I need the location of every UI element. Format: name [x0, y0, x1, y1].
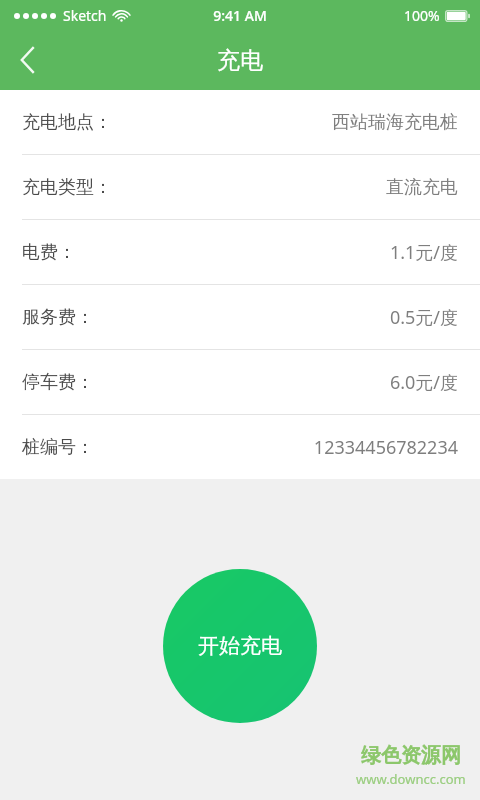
button[interactable]: Back [0, 33, 54, 87]
staticText: 直流充电 [386, 176, 458, 199]
button[interactable]: 充电类型： [0, 155, 480, 219]
staticText: 9:41 AM [213, 6, 267, 25]
staticText: 1.1元/度 [389, 240, 458, 265]
staticText: Sketch [63, 6, 107, 25]
staticText: 充电 [217, 46, 263, 75]
staticText: 100% [404, 6, 440, 25]
staticText: 电费： [22, 241, 76, 264]
button[interactable]: 开始充电 [163, 569, 317, 723]
button[interactable]: 充电地点： [0, 90, 480, 154]
staticText: 桩编号： [22, 436, 94, 459]
button[interactable]: 服务费： [0, 285, 480, 349]
staticText: 12334456782234 [313, 435, 458, 460]
staticText: 开始充电 [198, 633, 282, 659]
staticText: 服务费： [22, 306, 94, 329]
staticText: 6.0元/度 [389, 370, 458, 395]
button[interactable]: 桩编号： [0, 415, 480, 479]
staticText: www.downcc.com [356, 770, 466, 788]
staticText: 绿色资源网 [361, 743, 461, 768]
staticText: 停车费： [22, 371, 94, 394]
button[interactable]: 停车费： [0, 350, 480, 414]
staticText: 充电类型： [22, 176, 112, 199]
staticText: 西站瑞海充电桩 [332, 111, 458, 134]
staticText: 0.5元/度 [389, 305, 458, 330]
staticText: 充电地点： [22, 111, 112, 134]
button[interactable]: 电费： [0, 220, 480, 284]
